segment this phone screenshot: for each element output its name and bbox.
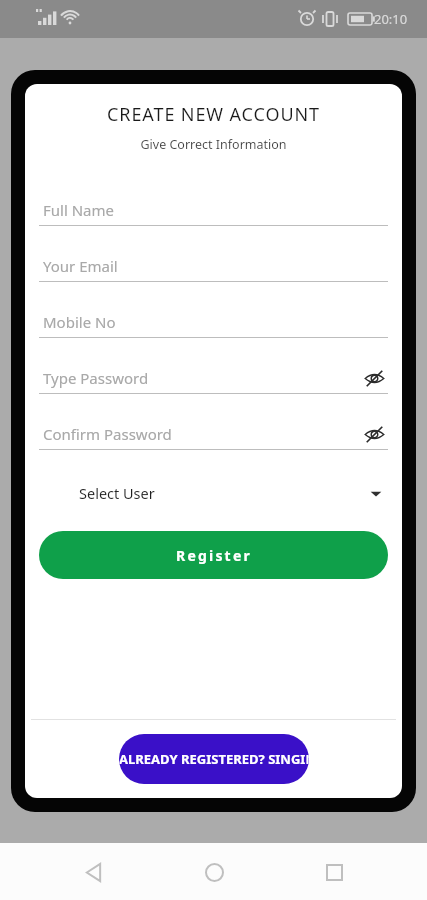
staticText: 20:10 bbox=[374, 10, 408, 28]
staticText: Mobile No bbox=[43, 312, 116, 332]
button[interactable]: Back bbox=[65, 844, 121, 900]
staticText: Full Name bbox=[43, 200, 114, 220]
button[interactable]: Full Name bbox=[39, 195, 388, 225]
staticText: Confirm Password bbox=[43, 424, 172, 444]
button[interactable]: Toggle password visibility bbox=[360, 420, 388, 448]
staticText: Type Password bbox=[43, 368, 149, 388]
button[interactable]: Confirm Password bbox=[39, 419, 388, 449]
button[interactable]: Toggle password visibility bbox=[360, 364, 388, 392]
staticText: Your Email bbox=[43, 256, 118, 276]
button[interactable]: Your Email bbox=[39, 251, 388, 281]
staticText: CREATE NEW ACCOUNT bbox=[25, 102, 402, 127]
button[interactable]: Mobile No bbox=[39, 307, 388, 337]
button[interactable]: Select User bbox=[39, 472, 388, 514]
button[interactable]: Register bbox=[39, 531, 388, 579]
staticText: ALREADY REGISTERED? SINGIN bbox=[119, 750, 309, 768]
button[interactable]: Home bbox=[186, 844, 242, 900]
staticText: Register bbox=[176, 546, 252, 565]
button[interactable]: Recent apps bbox=[306, 844, 362, 900]
button[interactable]: Type Password bbox=[39, 363, 388, 393]
button[interactable]: ALREADY REGISTERED? SINGIN bbox=[119, 734, 309, 784]
staticText: Select User bbox=[79, 483, 155, 503]
staticText: Give Correct Information bbox=[25, 136, 402, 153]
